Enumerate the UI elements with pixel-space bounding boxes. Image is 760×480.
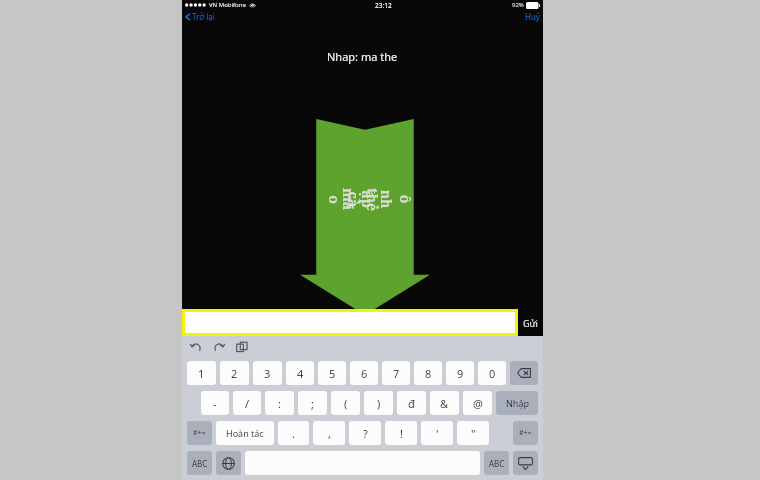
staticText: 2 bbox=[231, 366, 238, 381]
button[interactable]: Hoàn tác bbox=[216, 421, 274, 445]
staticText: đ bbox=[408, 396, 415, 411]
staticText: Nhap: ma the bbox=[327, 49, 398, 64]
staticText: Nhập bbox=[506, 397, 529, 409]
button[interactable]: - bbox=[201, 391, 229, 415]
staticText: " bbox=[471, 426, 476, 441]
button[interactable]: Nhập bbox=[496, 391, 538, 415]
staticText: @ bbox=[473, 396, 483, 411]
button[interactable]: 1 bbox=[187, 361, 216, 385]
button[interactable]: 9 bbox=[446, 361, 474, 385]
staticText: ? bbox=[363, 426, 368, 441]
staticText: ; bbox=[311, 396, 314, 411]
button[interactable]: 6 bbox=[350, 361, 378, 385]
button[interactable]: Undo bbox=[190, 341, 202, 353]
staticText: Gửi bbox=[523, 317, 538, 329]
button[interactable]: #+= bbox=[513, 421, 538, 445]
staticText: Hoàn tác bbox=[226, 427, 264, 439]
staticText: 0 bbox=[489, 366, 496, 381]
button[interactable]: 0 bbox=[478, 361, 506, 385]
button[interactable]: Huỷ bbox=[525, 11, 540, 22]
button[interactable]: Trở lại bbox=[185, 11, 215, 22]
button[interactable]: ' bbox=[421, 421, 453, 445]
staticText: ( bbox=[344, 396, 348, 411]
button[interactable]: / bbox=[233, 391, 261, 415]
staticText: #+= bbox=[519, 428, 532, 438]
staticText: ) bbox=[377, 396, 381, 411]
button[interactable]: . bbox=[278, 421, 309, 445]
button[interactable]: #+= bbox=[187, 421, 212, 445]
staticText: , bbox=[328, 426, 331, 441]
button[interactable]: @ bbox=[463, 391, 492, 415]
button[interactable]: & bbox=[430, 391, 459, 415]
button[interactable]: ? bbox=[349, 421, 381, 445]
button[interactable]: ! bbox=[385, 421, 417, 445]
button[interactable]: 7 bbox=[382, 361, 410, 385]
button[interactable]: Backspace bbox=[510, 361, 538, 385]
button[interactable]: 5 bbox=[318, 361, 346, 385]
staticText: 4 bbox=[297, 366, 304, 381]
staticText: VN Mobifone bbox=[209, 1, 246, 9]
staticText: Trở lại bbox=[192, 11, 215, 22]
button[interactable]: 8 bbox=[414, 361, 442, 385]
staticText: - bbox=[213, 396, 217, 411]
staticText: ô nhập mã bbox=[339, 187, 415, 211]
button[interactable]: Redo bbox=[213, 341, 225, 353]
button[interactable]: , bbox=[313, 421, 345, 445]
staticText: 3 bbox=[264, 366, 271, 381]
button[interactable]: 2 bbox=[220, 361, 249, 385]
staticText: Huỷ bbox=[525, 11, 540, 22]
button[interactable]: Gửi bbox=[518, 309, 543, 336]
staticText: 9 bbox=[457, 366, 464, 381]
button[interactable]: ABC bbox=[484, 451, 509, 475]
staticText: & bbox=[440, 396, 449, 411]
button[interactable]: " bbox=[457, 421, 489, 445]
staticText: ! bbox=[400, 426, 403, 441]
staticText: 5 bbox=[329, 366, 336, 381]
button[interactable]: đ bbox=[397, 391, 426, 415]
staticText: ' bbox=[436, 426, 439, 441]
staticText: ABC bbox=[489, 458, 505, 469]
button[interactable]: Change language bbox=[216, 451, 241, 475]
staticText: 1 bbox=[198, 366, 205, 381]
button[interactable]: 4 bbox=[286, 361, 314, 385]
staticText: 8 bbox=[425, 366, 432, 381]
staticText: thẻ cào bbox=[324, 187, 381, 211]
button[interactable]: ; bbox=[298, 391, 327, 415]
staticText: 7 bbox=[393, 366, 400, 381]
button[interactable]: : bbox=[265, 391, 294, 415]
button[interactable]: 3 bbox=[253, 361, 282, 385]
staticText: #+= bbox=[193, 428, 206, 438]
button[interactable]: Copy bbox=[236, 341, 248, 353]
staticText: : bbox=[278, 396, 281, 411]
staticText: / bbox=[245, 396, 250, 411]
button[interactable]: ABC bbox=[187, 451, 212, 475]
staticText: 92% bbox=[512, 1, 524, 9]
staticText: . bbox=[292, 426, 295, 441]
staticText: 6 bbox=[361, 366, 368, 381]
button[interactable]: ) bbox=[364, 391, 393, 415]
staticText: ABC bbox=[192, 458, 208, 469]
staticText: 23:12 bbox=[375, 1, 392, 10]
button[interactable]: Hide keyboard bbox=[513, 451, 538, 475]
button[interactable]: ( bbox=[331, 391, 360, 415]
